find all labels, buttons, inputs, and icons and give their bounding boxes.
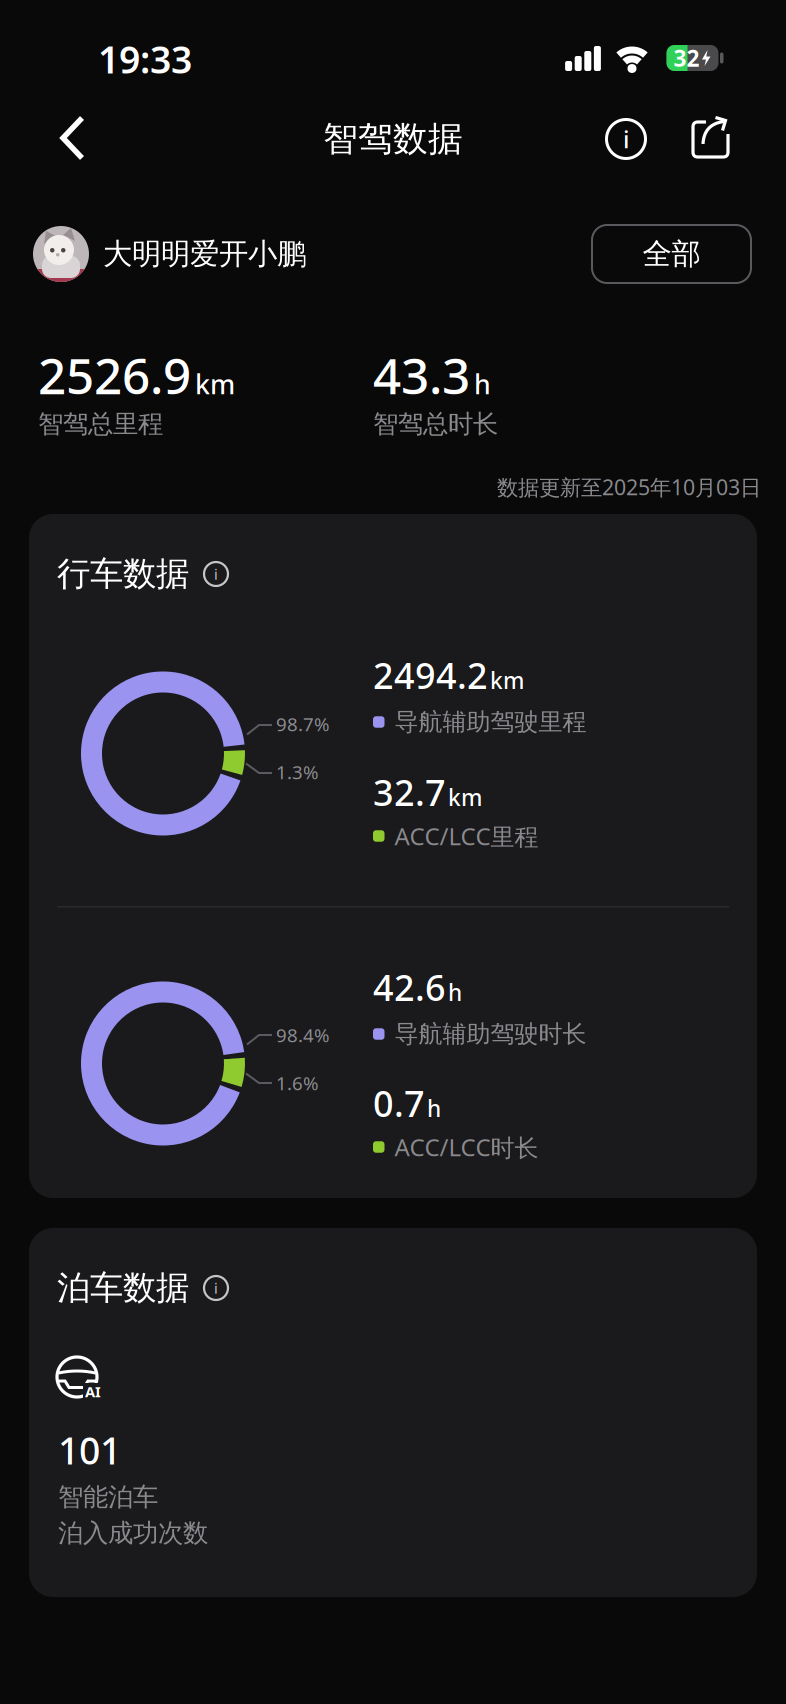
staticText: 2526.9: [38, 342, 191, 408]
staticText: 导航辅助驾驶里程: [394, 707, 586, 737]
staticText: ACC/LCC里程: [394, 820, 538, 852]
staticText: 0.7: [373, 1079, 425, 1127]
staticText: i: [214, 1278, 218, 1298]
staticText: 101: [58, 1425, 121, 1475]
staticText: 智驾总时长: [373, 408, 498, 439]
staticText: 大明明爱开小鹏: [103, 236, 306, 272]
staticText: 导航辅助驾驶时长: [394, 1019, 586, 1049]
staticText: 1.6%: [276, 1071, 319, 1095]
staticText: AI: [85, 1382, 101, 1401]
button[interactable]: Back: [60, 114, 86, 162]
staticText: 泊入成功次数: [58, 1517, 208, 1548]
button[interactable]: Share: [690, 116, 732, 160]
button[interactable]: Info: [604, 117, 648, 161]
staticText: 全部: [642, 236, 700, 272]
staticText: km: [195, 366, 235, 401]
staticText: 2494.2: [373, 651, 488, 699]
staticText: i: [623, 123, 629, 155]
staticText: ACC/LCC时长: [394, 1131, 538, 1163]
button[interactable]: 全部: [592, 225, 751, 283]
staticText: 32.7: [373, 768, 446, 816]
staticText: h: [448, 977, 462, 1007]
staticText: 数据更新至2025年10月03日: [497, 473, 761, 501]
staticText: 智驾总里程: [38, 408, 163, 439]
staticText: 行车数据: [57, 553, 189, 594]
staticText: i: [214, 564, 218, 584]
staticText: 32: [673, 43, 699, 73]
staticText: h: [474, 366, 491, 401]
staticText: km: [490, 665, 524, 695]
staticText: 42.6: [373, 963, 446, 1011]
staticText: 智能泊车: [58, 1481, 158, 1512]
button[interactable]: Info: [202, 1274, 230, 1302]
staticText: 98.7%: [276, 712, 330, 736]
staticText: 智驾数据: [323, 118, 463, 160]
staticText: 98.4%: [276, 1023, 330, 1047]
staticText: km: [448, 782, 482, 812]
staticText: 43.3: [373, 342, 470, 408]
staticText: h: [427, 1093, 441, 1123]
staticText: 19:33: [98, 34, 192, 84]
button[interactable]: Info: [202, 560, 230, 588]
staticText: 泊车数据: [57, 1267, 189, 1308]
staticText: 1.3%: [276, 760, 319, 784]
